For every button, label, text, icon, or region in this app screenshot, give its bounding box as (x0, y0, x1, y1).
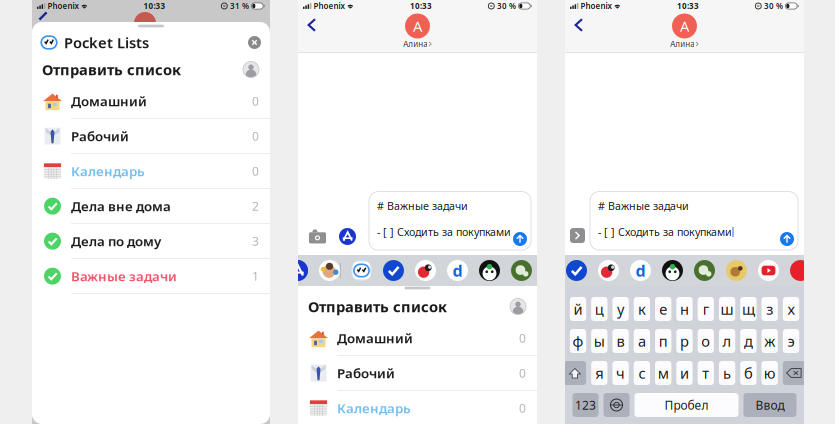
button[interactable]: й (570, 297, 586, 321)
staticText: я (595, 363, 603, 383)
button[interactable]: м (655, 361, 671, 385)
staticText: с (638, 363, 645, 383)
staticText: р (680, 331, 689, 351)
button[interactable]: е (655, 297, 671, 321)
button[interactable]: App 4 (383, 260, 404, 281)
button[interactable]: к (634, 297, 650, 321)
button[interactable]: Back (565, 12, 590, 38)
button[interactable]: Expand apps (565, 228, 590, 250)
button[interactable]: Send (776, 228, 798, 250)
staticText: Отправить список (308, 297, 447, 316)
button[interactable]: App 5 (598, 260, 619, 281)
button[interactable]: ф (570, 329, 586, 353)
button[interactable]: ж (761, 329, 778, 353)
staticText: Важные задачи (71, 267, 177, 285)
button[interactable]: х (783, 297, 799, 321)
button[interactable]: App 1 (287, 260, 308, 281)
staticText: Календарь (337, 399, 411, 417)
staticText: Дела вне дома (71, 197, 171, 215)
staticText: Домашний (71, 92, 147, 110)
button[interactable]: щ (740, 297, 756, 321)
staticText: d (635, 260, 645, 281)
button[interactable]: Ввод (743, 393, 796, 417)
staticText: Отправить список (42, 60, 181, 79)
button[interactable]: Switch keyboard (603, 393, 629, 417)
button[interactable]: Apps (339, 228, 356, 245)
staticText: d (452, 260, 462, 281)
button[interactable]: р (676, 329, 693, 353)
button[interactable]: п (655, 329, 671, 353)
staticText: Календарь (71, 162, 145, 180)
button[interactable]: з (761, 297, 778, 321)
button[interactable]: Рабочий (32, 119, 270, 154)
button[interactable]: Важные задачи (32, 259, 270, 294)
button[interactable]: App 8 (511, 260, 532, 281)
staticText: в (617, 331, 625, 351)
button[interactable]: г (698, 297, 714, 321)
button[interactable]: а (634, 329, 650, 353)
button[interactable]: Календарь (298, 391, 537, 424)
button[interactable]: App 9 (726, 260, 747, 281)
button[interactable]: 123 (572, 393, 598, 417)
button[interactable]: Choose contact (243, 61, 259, 77)
staticText: Домашний (337, 329, 413, 347)
button[interactable]: д (740, 329, 756, 353)
button[interactable]: App 6 (630, 260, 651, 281)
button[interactable]: л (719, 329, 735, 353)
button[interactable]: о (698, 329, 714, 353)
staticText: х (787, 299, 794, 319)
staticText: Рабочий (337, 364, 395, 382)
button[interactable]: Рабочий (298, 356, 537, 391)
button[interactable]: Дела вне дома (32, 189, 270, 224)
staticText: 10:33 (410, 1, 432, 11)
button[interactable]: App 10 (758, 260, 779, 281)
button[interactable]: у (612, 297, 629, 321)
staticText: Pocket Lists (64, 33, 149, 52)
button[interactable]: и (676, 361, 693, 385)
button[interactable]: Календарь (32, 154, 270, 189)
staticText: ф (572, 331, 583, 351)
button[interactable]: App 7 (662, 260, 683, 281)
button[interactable]: я (591, 361, 607, 385)
staticText: Алина (403, 39, 427, 49)
button[interactable]: App 4 (566, 260, 587, 281)
button[interactable]: Домашний (32, 84, 270, 119)
button[interactable]: Send (509, 228, 531, 250)
button[interactable]: Back (298, 12, 323, 38)
button[interactable]: ь (719, 361, 735, 385)
button[interactable]: ю (761, 361, 778, 385)
button[interactable]: App 5 (415, 260, 436, 281)
button[interactable]: ц (591, 297, 607, 321)
button[interactable]: App 11 (790, 260, 811, 281)
button[interactable]: Shift (564, 361, 586, 385)
button[interactable]: Пробел (634, 393, 738, 417)
button[interactable]: Delete (783, 361, 805, 385)
button[interactable]: Close (248, 36, 261, 49)
button[interactable]: н (676, 297, 693, 321)
button[interactable]: т (698, 361, 714, 385)
staticText: Phoenix (48, 1, 79, 11)
button[interactable]: в (612, 329, 629, 353)
staticText: A (413, 16, 422, 36)
button[interactable]: App 7 (479, 260, 500, 281)
button[interactable]: Camera (309, 229, 326, 243)
button[interactable]: с (634, 361, 650, 385)
button[interactable]: ш (719, 297, 735, 321)
button[interactable]: Choose contact (510, 298, 526, 314)
button[interactable]: ы (591, 329, 607, 353)
staticText: ч (616, 363, 625, 383)
button[interactable]: App 6 (447, 260, 468, 281)
staticText: ы (594, 331, 605, 351)
button[interactable]: б (740, 361, 756, 385)
staticText: Рабочий (71, 127, 129, 145)
button[interactable]: ч (612, 361, 629, 385)
button[interactable]: App 3 (351, 260, 372, 281)
button[interactable]: App 2 (319, 260, 340, 281)
staticText: д (744, 331, 753, 351)
button[interactable]: Дела по дому (32, 224, 270, 259)
staticText: Пробел (664, 397, 708, 413)
button[interactable]: Домашний (298, 321, 537, 356)
staticText: Ввод (755, 397, 784, 413)
button[interactable]: э (783, 329, 799, 353)
button[interactable]: App 8 (694, 260, 715, 281)
